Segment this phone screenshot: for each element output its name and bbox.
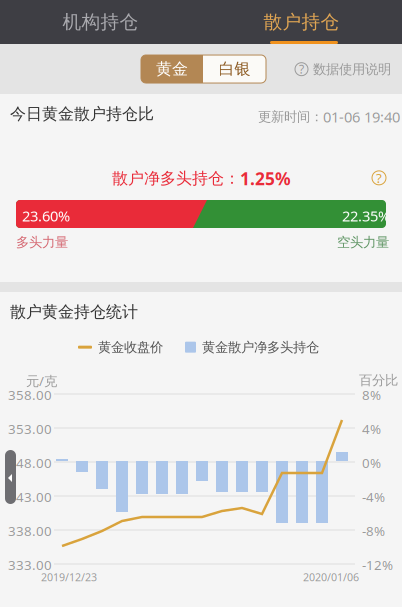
staticText: 8% [362,386,381,404]
staticText: 散户黄金持仓统计 [10,302,138,322]
staticText: 黄金收盘价 [98,339,163,355]
staticText: 2019/12/23 [41,570,97,584]
staticText: 353.00 [8,420,52,438]
staticText: 散户持仓 [263,10,339,33]
staticText: 更新时间： [258,109,323,125]
button[interactable]: 散户持仓 [201,0,402,44]
staticText: 23.60% [22,206,70,225]
staticText: 338.00 [8,522,52,540]
staticText: 散户净多头持仓： [112,169,240,188]
staticText: 343.00 [8,488,52,506]
staticText: 百分比 [359,372,398,388]
staticText: 黄金散户净多头持仓 [202,339,319,355]
button[interactable]: 黄金 [141,55,203,83]
staticText: 白银 [218,59,250,79]
staticText: 空头力量 [337,234,389,250]
staticText: 01-06 19:40 [323,107,400,126]
button[interactable]: 机构持仓 [0,0,201,44]
staticText: 4% [362,420,381,438]
staticText: 0% [362,454,381,472]
staticText: 358.00 [8,386,52,404]
staticText: 今日黄金散户持仓比 [10,104,154,124]
staticText: 机构持仓 [62,10,138,33]
staticText: 333.00 [8,556,52,574]
staticText: ? [299,61,304,77]
button[interactable]: 帮助 [372,169,386,187]
staticText: -12% [362,556,393,574]
button[interactable]: ? [295,61,391,77]
staticText: 1.25% [240,167,291,190]
staticText: -8% [362,522,385,540]
staticText: 348.00 [8,454,52,472]
staticText: 22.35% [342,206,390,225]
staticText: 多头力量 [16,234,68,250]
staticText: 2020/01/06 [303,570,359,584]
staticText: 数据使用说明 [313,61,391,77]
staticText: -4% [362,488,385,506]
staticText: ? [376,169,382,187]
button[interactable]: 白银 [203,55,266,83]
staticText: 元/克 [26,372,57,390]
staticText: 黄金 [156,59,188,79]
